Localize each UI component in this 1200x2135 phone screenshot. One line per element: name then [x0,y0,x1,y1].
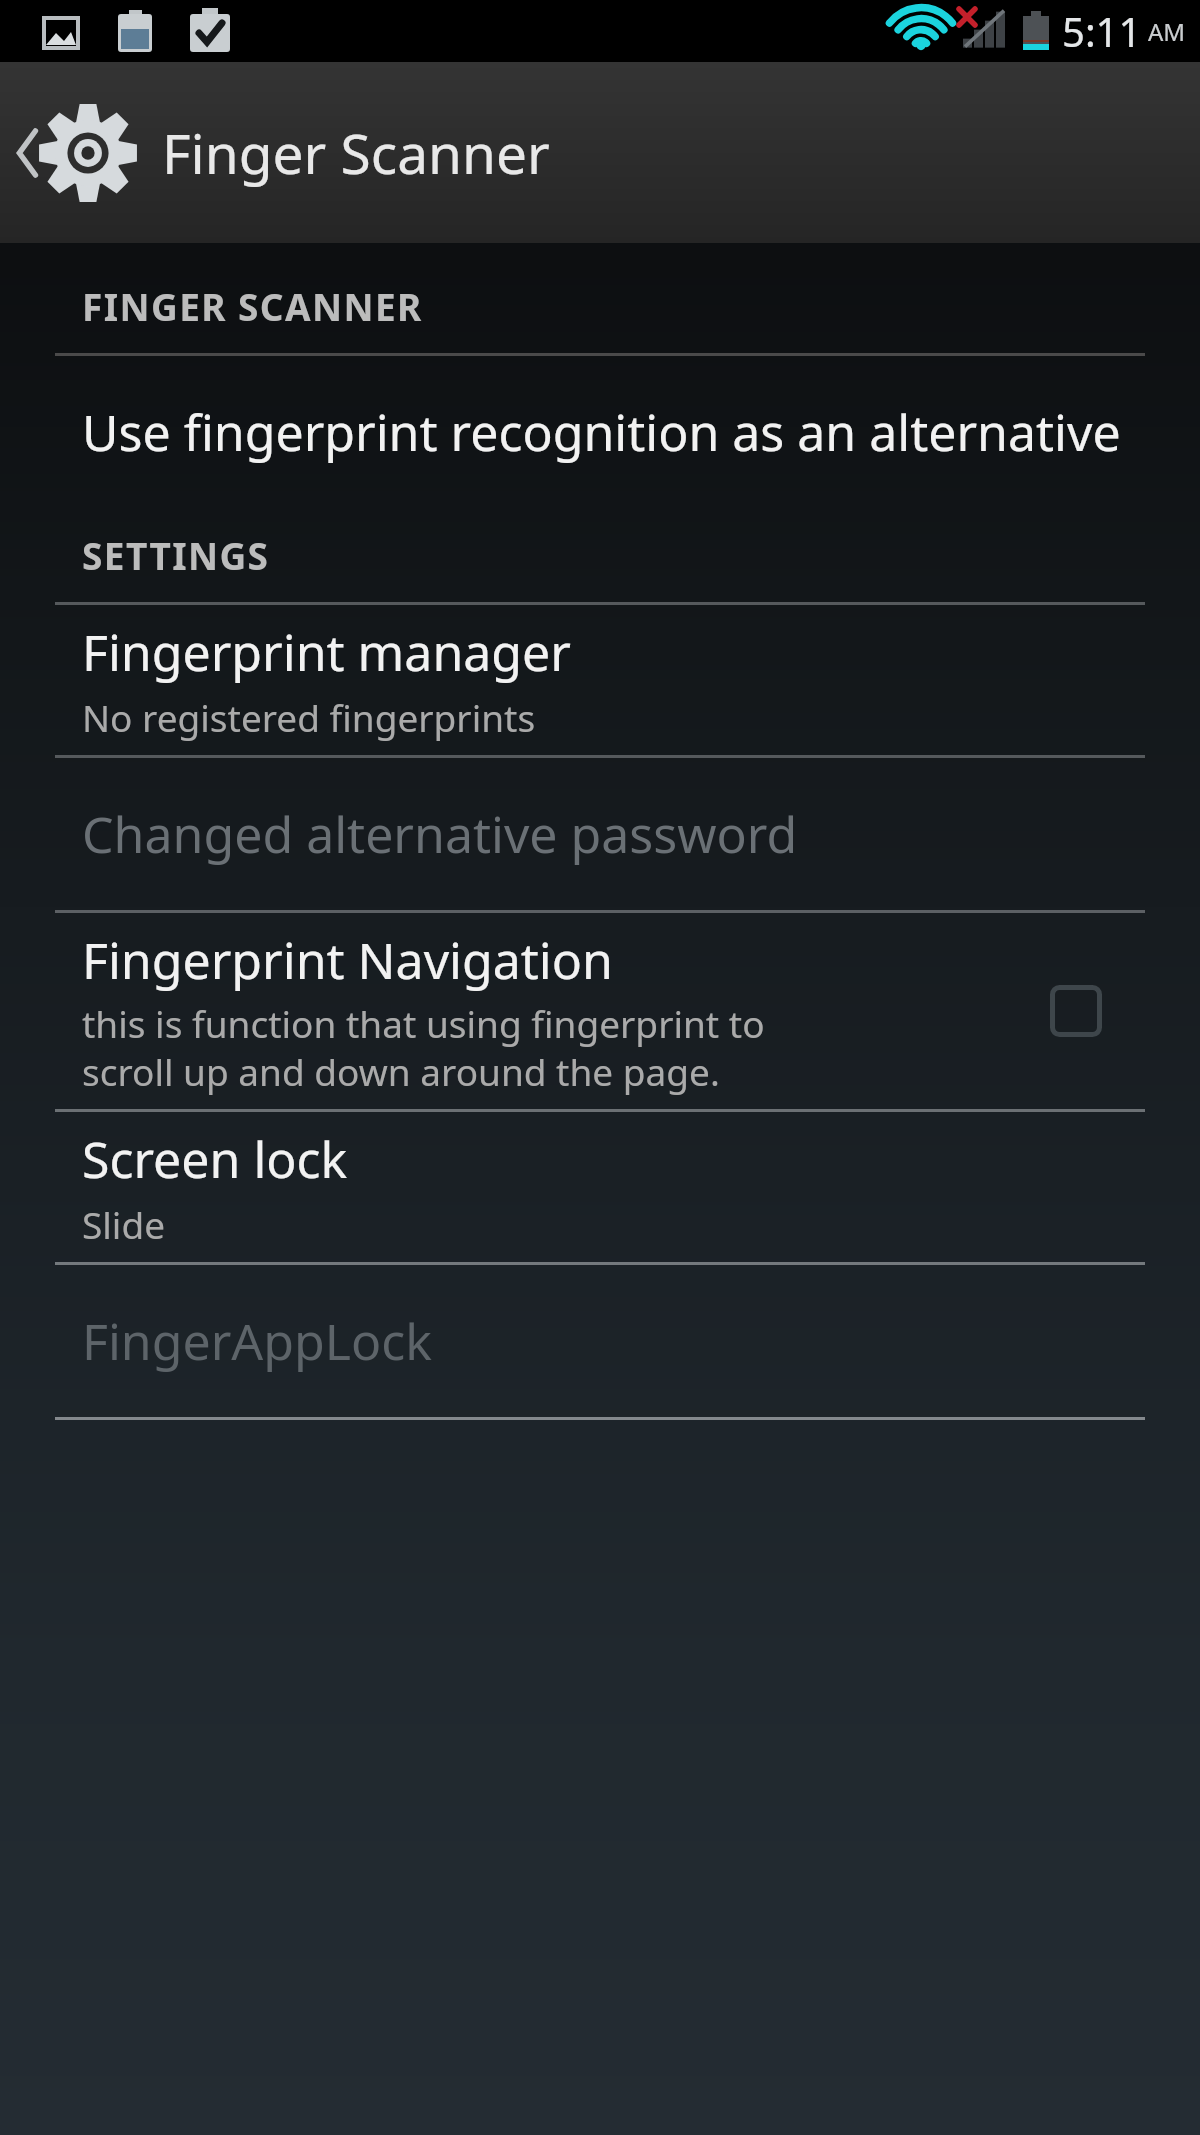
button[interactable]: Fingerprint Navigation checkbox [1030,965,1122,1057]
button[interactable]: Navigate up to Settings [0,87,150,219]
staticText: AM [1148,15,1186,48]
staticText: 5:11 [1062,4,1142,58]
staticText: Use fingerprint recognition as an altern… [82,398,1121,466]
staticText: this is function that using fingerprint … [82,998,765,1097]
button[interactable]: Use fingerprint recognition as an altern… [0,356,1200,508]
staticText: Fingerprint manager [82,618,571,686]
staticText: Slide [82,1199,166,1249]
staticText: No registered fingerprints [82,692,536,742]
staticText: Changed alternative password [82,800,798,868]
staticText: Finger Scanner [162,115,550,190]
staticText: Fingerprint Navigation [82,926,613,994]
button[interactable]: FingerAppLock [0,1265,1200,1417]
button[interactable]: Fingerprint manager [0,605,1200,755]
button[interactable]: Changed alternative password [0,758,1200,910]
button[interactable]: Screen lock [0,1112,1200,1262]
staticText: SETTINGS [82,530,270,580]
staticText: FINGER SCANNER [82,281,423,331]
button[interactable]: Fingerprint Navigation [0,913,1200,1109]
staticText: FingerAppLock [82,1307,432,1375]
staticText: Screen lock [82,1125,348,1193]
